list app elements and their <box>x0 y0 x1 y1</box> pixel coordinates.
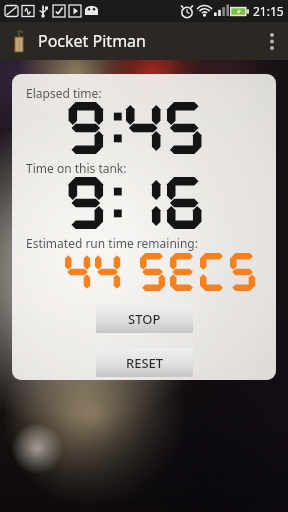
staticText: 21:15 <box>253 3 284 19</box>
staticText: Elapsed time: <box>26 85 102 101</box>
staticText: Pocket Pitman <box>38 30 146 52</box>
staticText: RESET <box>126 354 164 372</box>
staticText: STOP <box>128 310 161 328</box>
button[interactable]: RESET <box>96 348 193 377</box>
staticText: Time on this tank: <box>26 160 127 176</box>
staticText: Estimated run time remaining: <box>26 235 198 251</box>
button[interactable]: STOP <box>96 304 193 333</box>
button[interactable]: More options <box>256 22 288 60</box>
